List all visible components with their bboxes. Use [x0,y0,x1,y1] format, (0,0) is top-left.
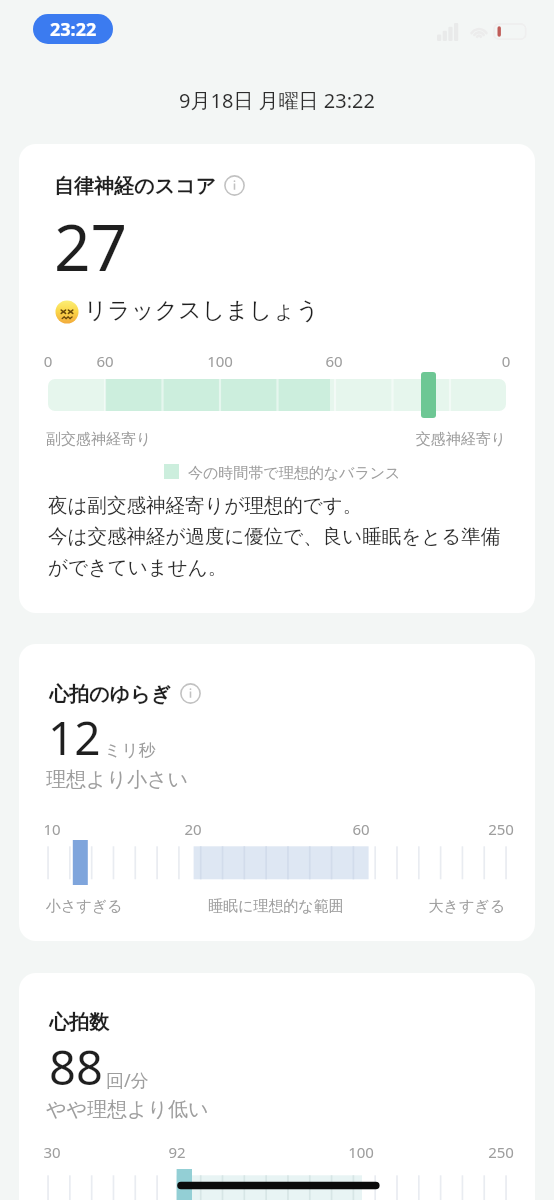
staticText: 大きすぎる [405,897,505,916]
staticText: 0 [446,351,535,371]
staticText: 60 [274,351,394,371]
staticText: 60 [45,351,165,371]
staticText: 100 [301,1142,421,1162]
staticText: 睡眠に理想的な範囲 [208,897,344,916]
staticText: 心拍数 [49,1010,109,1035]
button[interactable]: 23:22 [33,14,113,44]
button[interactable]: 自律神経のスコア [19,144,535,613]
button[interactable]: 心拍数 [19,973,535,1200]
staticText: 回/分 [106,1068,149,1093]
staticText: 88 [49,1035,103,1099]
staticText: 12 [48,706,101,769]
staticText: 20 [133,819,253,839]
staticText: 理想より小さい [46,767,188,792]
staticText: ミリ秒 [104,740,156,761]
staticText: 92 [117,1142,237,1162]
staticText: 23:22 [50,17,97,42]
staticText: 夜は副交感神経寄りが理想的です。 今は交感神経が過度に優位で、良い睡眠をとる準備… [48,493,513,580]
staticText: 27 [54,203,128,290]
staticText: やや理想より低い [46,1097,209,1122]
button[interactable]: 心拍のゆらぎ [19,644,535,941]
staticText: リラックスしましょう [84,296,320,325]
staticText: 自律神経のスコア [54,174,216,199]
staticText: 心拍のゆらぎ [49,682,171,707]
staticText: 今の時間帯で理想的なバランス [188,464,401,483]
staticText: 250 [441,1142,535,1162]
staticText: 0 [19,351,108,371]
button[interactable]: Info [180,683,201,704]
staticText: 250 [441,819,535,839]
staticText: 30 [19,1142,112,1162]
staticText: 9月18日 月曜日 23:22 [0,87,554,114]
staticText: 100 [160,351,280,371]
staticText: 60 [301,819,421,839]
button[interactable]: Info [224,175,245,196]
staticText: 交感神経寄り [406,430,506,449]
staticText: 小さすぎる [46,897,123,916]
staticText: 10 [19,819,112,839]
staticText: 副交感神経寄り [46,430,152,449]
